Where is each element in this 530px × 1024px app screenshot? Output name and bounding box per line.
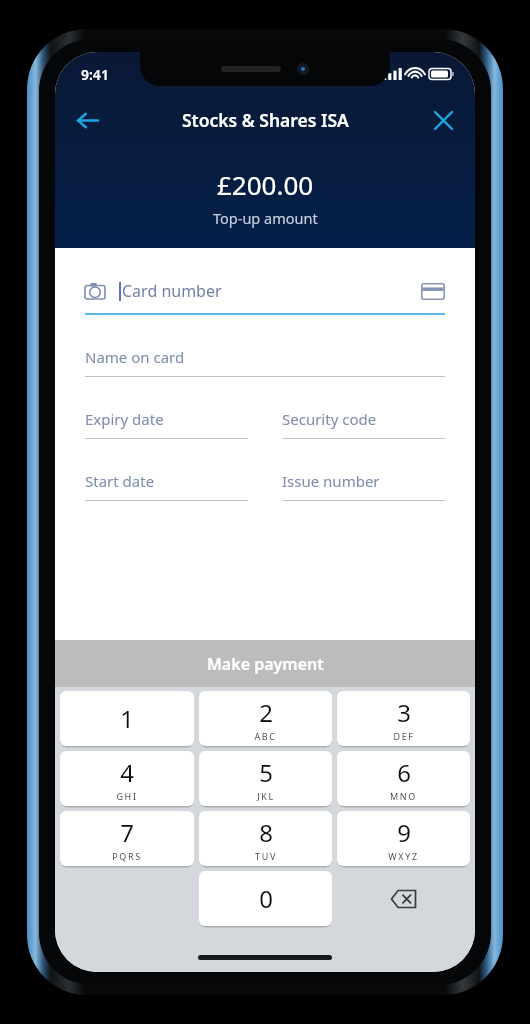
- staticText: £200.00: [217, 167, 314, 202]
- staticText: MNO: [390, 790, 417, 802]
- staticText: ABC: [254, 730, 277, 742]
- button[interactable]: Backspace: [337, 871, 470, 926]
- button[interactable]: 3: [337, 691, 470, 746]
- button[interactable]: 4: [60, 751, 194, 806]
- button[interactable]: 5: [199, 751, 332, 806]
- staticText: Issue number: [282, 471, 380, 491]
- staticText: Stocks & Shares ISA: [182, 108, 349, 132]
- staticText: 8: [259, 816, 273, 849]
- button[interactable]: Expiry date: [85, 409, 248, 439]
- button[interactable]: Back: [65, 98, 109, 142]
- staticText: 9:41: [81, 65, 109, 84]
- staticText: PQRS: [112, 850, 142, 862]
- staticText: WXYZ: [388, 850, 419, 862]
- button[interactable]: Issue number: [282, 471, 445, 501]
- button[interactable]: 9: [337, 811, 470, 866]
- button[interactable]: Name on card: [85, 347, 445, 377]
- button[interactable]: Security code: [282, 409, 445, 439]
- staticText: 0: [259, 882, 273, 915]
- button[interactable]: Scan card: [85, 276, 445, 315]
- staticText: 4: [120, 756, 134, 789]
- button[interactable]: 6: [337, 751, 470, 806]
- button[interactable]: Close: [421, 98, 465, 142]
- staticText: 1: [120, 702, 134, 735]
- staticText: 7: [120, 816, 134, 849]
- staticText: 2: [259, 696, 273, 729]
- staticText: Name on card: [85, 347, 185, 367]
- button[interactable]: Make payment: [55, 640, 475, 687]
- button[interactable]: 2: [199, 691, 332, 746]
- staticText: TUV: [255, 850, 277, 862]
- staticText: JKL: [257, 790, 275, 802]
- staticText: GHI: [116, 790, 138, 802]
- other: Scan card: [85, 283, 105, 299]
- staticText: Make payment: [207, 653, 324, 675]
- staticText: DEF: [393, 730, 415, 742]
- button[interactable]: Start date: [85, 471, 248, 501]
- button[interactable]: 0: [199, 871, 332, 926]
- button[interactable]: 7: [60, 811, 194, 866]
- button[interactable]: 1: [60, 691, 194, 746]
- other: Card: [421, 283, 445, 300]
- staticText: 9: [397, 816, 411, 849]
- staticText: Security code: [282, 409, 377, 429]
- staticText: 6: [397, 756, 411, 789]
- staticText: Expiry date: [85, 409, 164, 429]
- staticText: Start date: [85, 471, 155, 491]
- staticText: Card number: [122, 280, 222, 302]
- staticText: 3: [397, 696, 411, 729]
- staticText: Top-up amount: [213, 208, 318, 228]
- button[interactable]: 8: [199, 811, 332, 866]
- staticText: 5: [259, 756, 273, 789]
